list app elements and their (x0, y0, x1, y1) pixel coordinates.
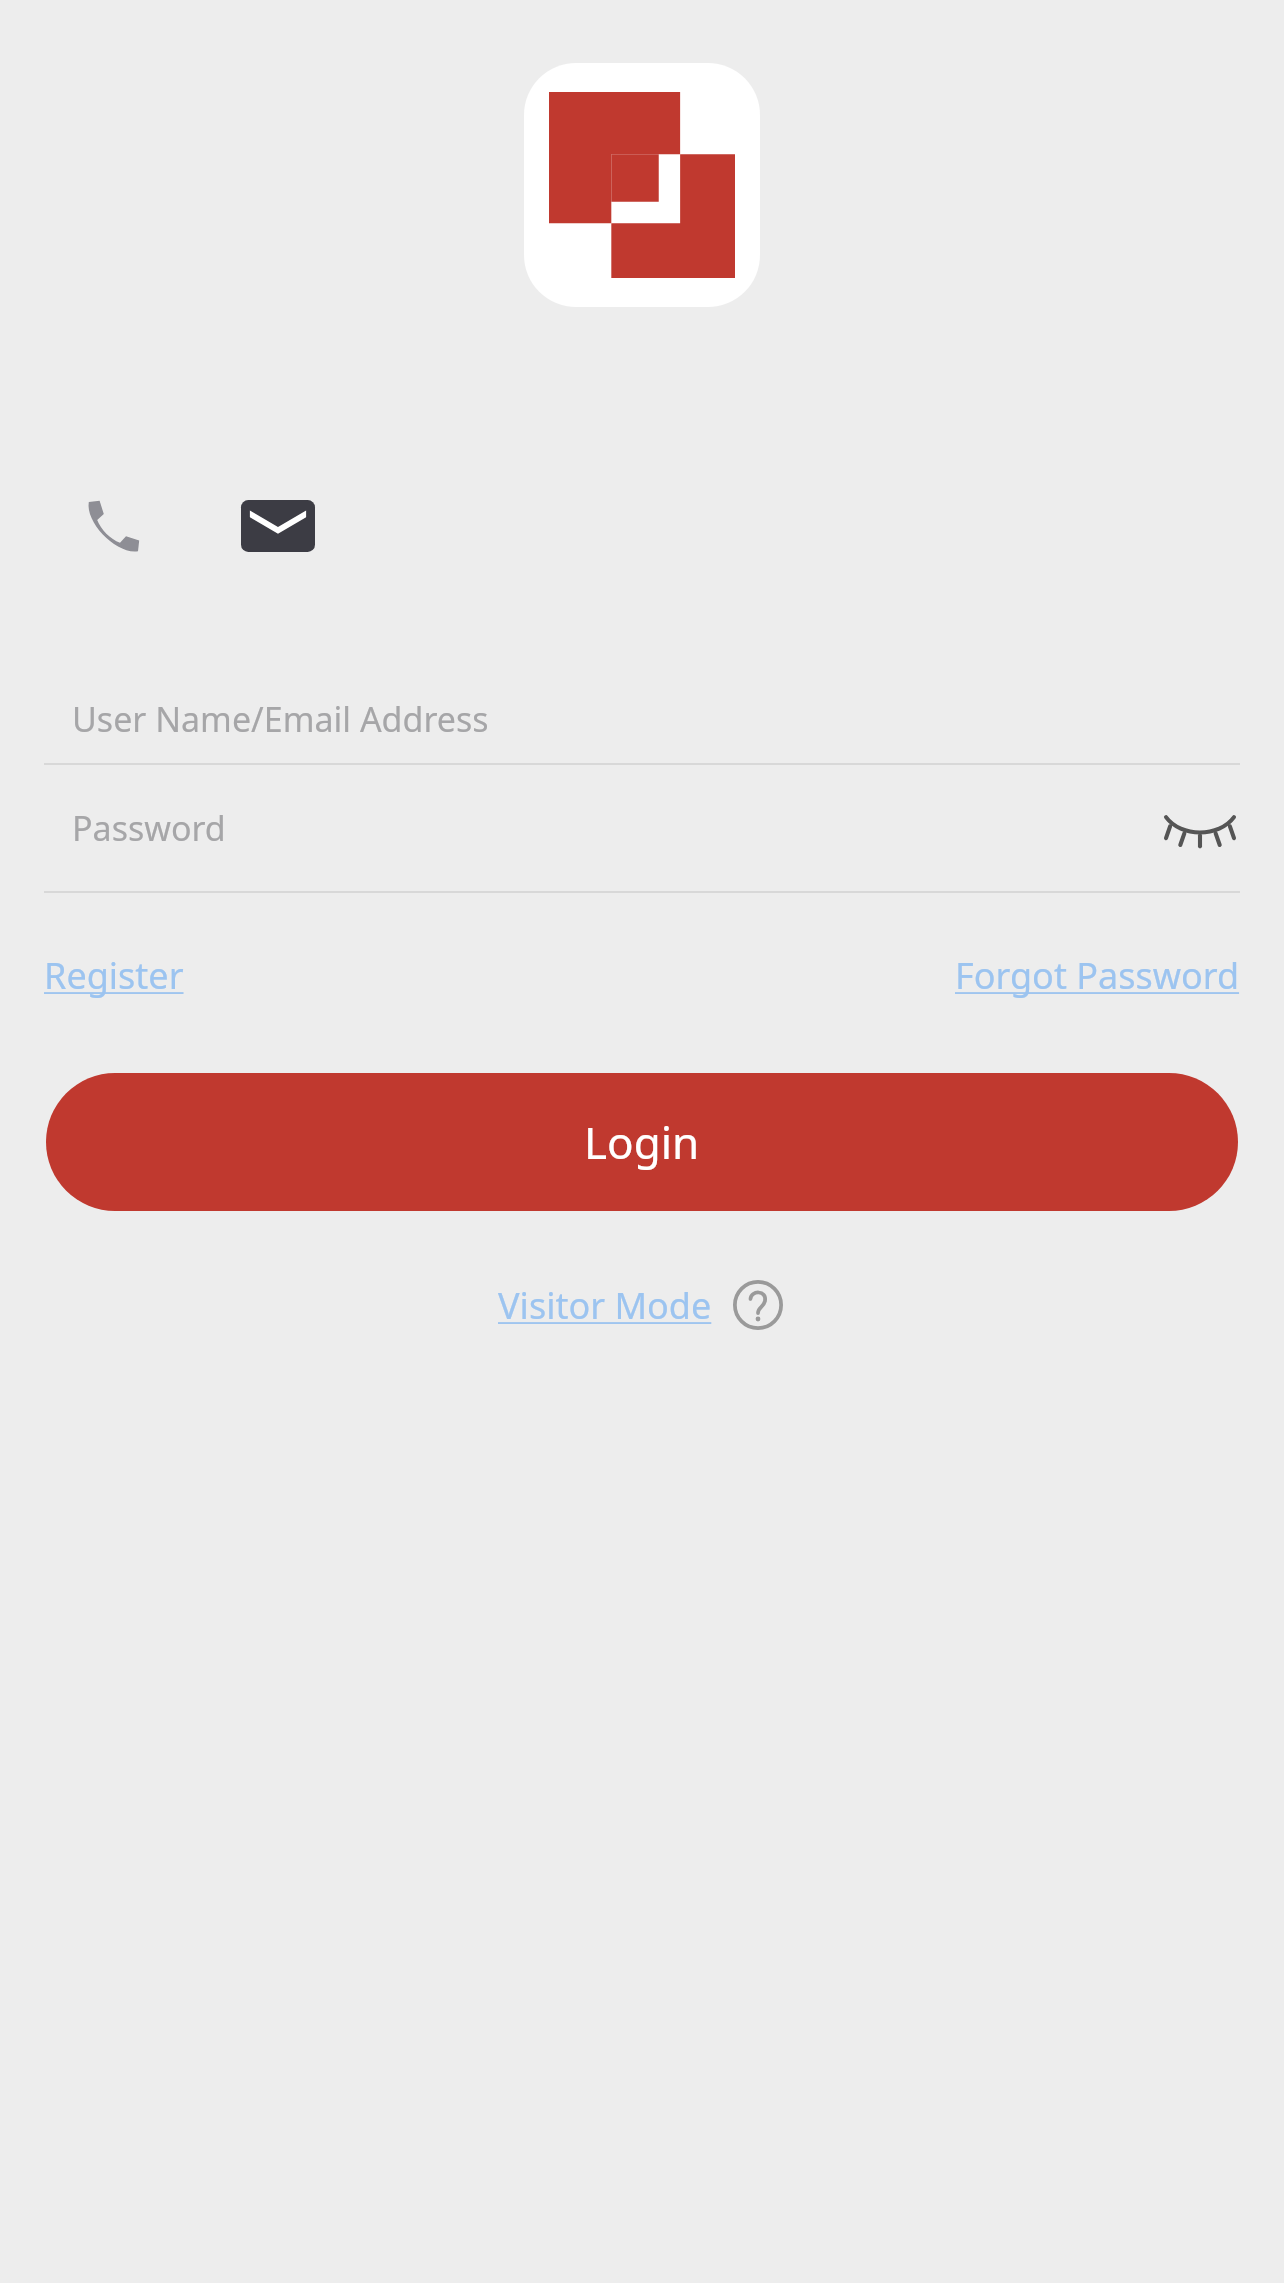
staticText: Visitor Mode (498, 1281, 712, 1330)
button[interactable]: Show password (1162, 798, 1238, 858)
button[interactable]: Password (0, 765, 1284, 891)
button[interactable]: Register (44, 951, 184, 1000)
staticText: Login (584, 1112, 700, 1172)
button[interactable]: Email login (241, 495, 315, 557)
button[interactable]: Forgot Password (955, 951, 1240, 1000)
button[interactable]: Visitor Mode (498, 1281, 712, 1330)
button[interactable]: Login (46, 1073, 1238, 1211)
staticText: Register (44, 951, 184, 1000)
button[interactable]: Phone login (83, 495, 145, 557)
staticText: Forgot Password (955, 951, 1240, 1000)
staticText: User Name/Email Address (72, 696, 489, 742)
staticText: Password (72, 805, 226, 851)
button[interactable]: User Name/Email Address (0, 675, 1284, 763)
button[interactable]: Help about visitor mode (730, 1277, 786, 1333)
